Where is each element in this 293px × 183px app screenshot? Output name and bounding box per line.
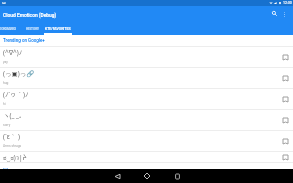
button[interactable]: ಠ‿ಠ)ว|ᔩ [0, 151, 293, 162]
button[interactable]: (´ε｀ ) [0, 130, 293, 151]
button[interactable]: Bookmark [277, 47, 293, 67]
button[interactable]: KTE/FAVORITES [44, 23, 72, 35]
button[interactable]: Search [266, 5, 283, 22]
button[interactable]: Back [102, 169, 132, 183]
staticText: (っ▣)っ🔗 [3, 69, 35, 78]
staticText: Arms shrugs [3, 144, 22, 148]
staticText: hi [3, 102, 6, 106]
button[interactable]: Home [132, 169, 162, 183]
button[interactable]: Bookmark [277, 110, 293, 130]
button[interactable] [3, 163, 293, 169]
button[interactable]: More options [277, 7, 291, 21]
button[interactable]: HISTORY [20, 23, 45, 35]
button[interactable]: (っ▣)っ🔗 [0, 67, 293, 88]
staticText: 12:30 [283, 1, 292, 5]
button[interactable]: (^∇^)ﾉ [0, 46, 293, 67]
staticText: (^∇^)ﾉ [3, 48, 22, 57]
staticText: yay [3, 60, 8, 64]
button[interactable]: BOOKMARKS [0, 23, 16, 35]
staticText: BOOKMARKS [0, 27, 16, 31]
staticText: sorry [3, 123, 11, 127]
staticText: Cloud Emoticon (Debug) [3, 12, 57, 18]
button[interactable]: ヽ(_ _｡ [0, 109, 293, 130]
staticText: KTE/FAVORITES [45, 27, 71, 31]
staticText: hug [3, 81, 9, 85]
button[interactable]: Recents [162, 169, 192, 183]
button[interactable]: Bookmark [277, 68, 293, 88]
button[interactable]: (ﾉ´ヮ｀)ﾉ [0, 88, 293, 109]
staticText: ヽ(_ _｡ [3, 111, 23, 120]
staticText: ಠ‿ಠ)ว|ᔩ [3, 153, 27, 162]
button[interactable]: Bookmark [277, 152, 293, 162]
staticText: (ﾉ´ヮ｀)ﾉ [3, 90, 29, 99]
staticText: HISTORY [26, 27, 40, 31]
button[interactable]: Bookmark [277, 89, 293, 109]
staticText: (´ε｀ ) [3, 132, 20, 141]
staticText: Trending on Google+ [3, 38, 45, 43]
button[interactable]: Bookmark [277, 131, 293, 151]
